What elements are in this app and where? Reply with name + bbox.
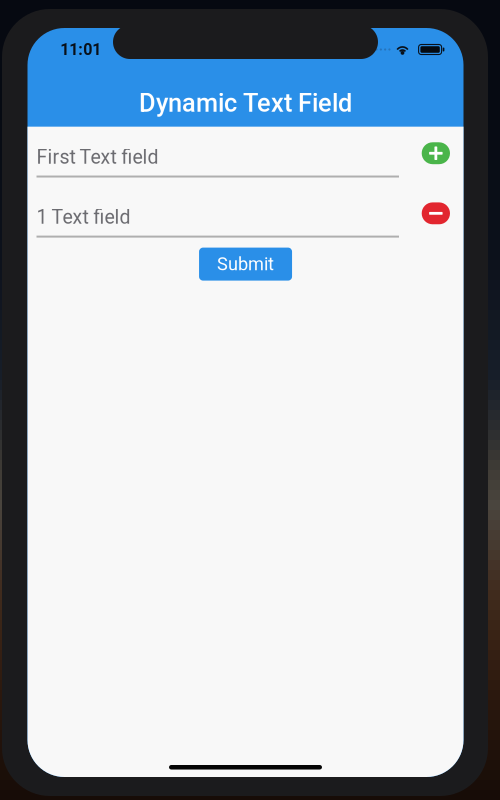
button[interactable]: Add text field bbox=[422, 142, 450, 164]
button[interactable]: Remove text field bbox=[422, 202, 450, 224]
staticText: First Text field bbox=[36, 146, 158, 168]
staticText: 1 Text field bbox=[36, 206, 130, 229]
staticText: Dynamic Text Field bbox=[139, 88, 352, 118]
button[interactable]: Submit bbox=[199, 248, 292, 281]
staticText: 11:01 bbox=[60, 40, 101, 59]
staticText: Submit bbox=[217, 253, 274, 275]
